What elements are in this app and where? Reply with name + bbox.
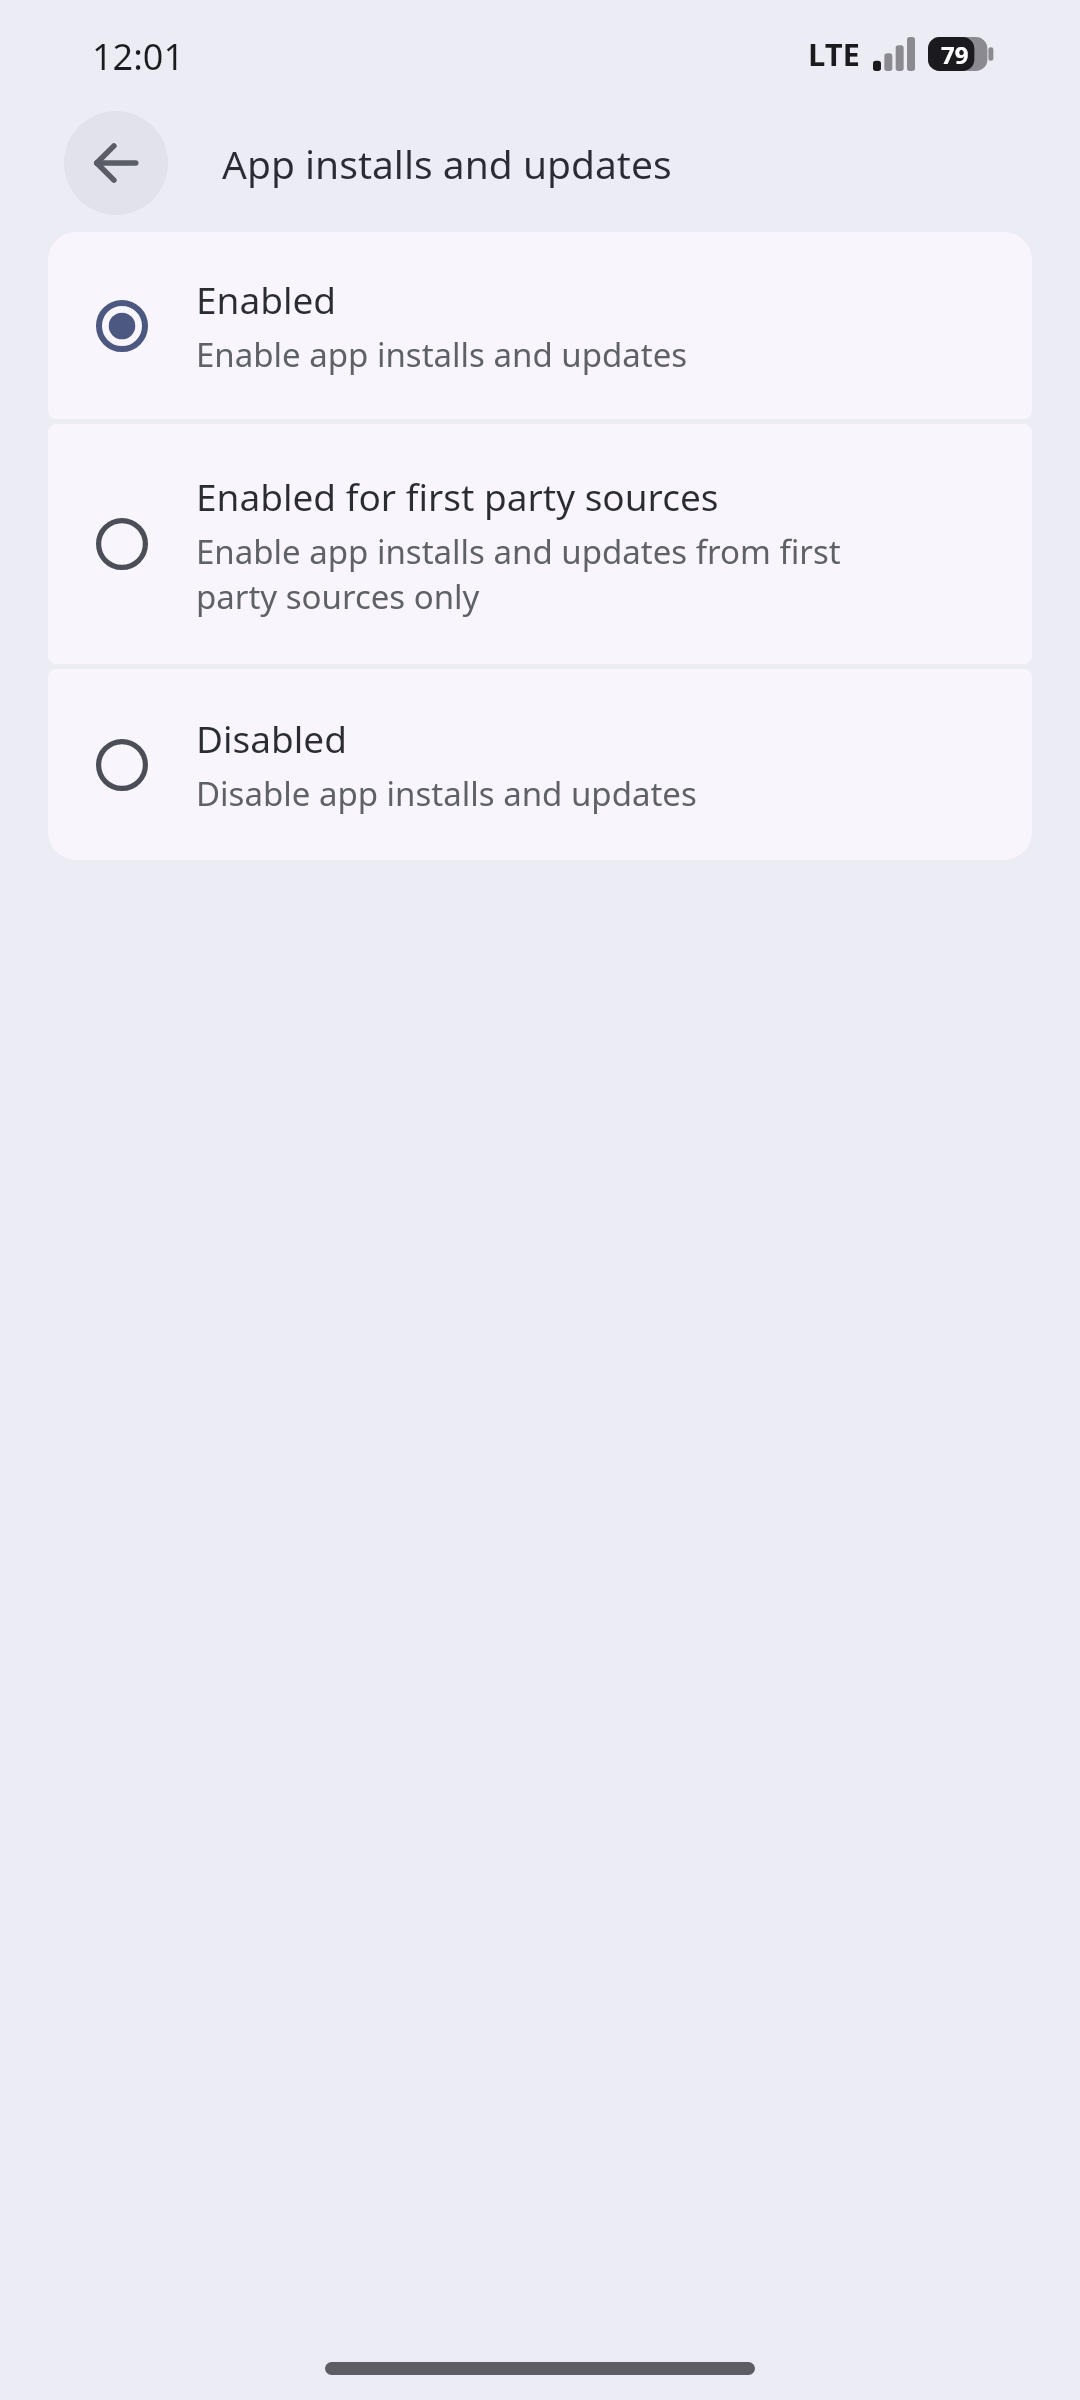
staticText: Enabled bbox=[196, 274, 337, 324]
staticText: Enable app installs and updates bbox=[196, 332, 688, 377]
staticText: Disabled bbox=[196, 713, 347, 763]
button[interactable]: Disabled bbox=[48, 669, 1032, 860]
staticText: Enabled for first party sources bbox=[196, 471, 719, 521]
staticText: 12:01 bbox=[92, 32, 185, 81]
button[interactable]: Enabled bbox=[48, 232, 1032, 419]
staticText: LTE bbox=[808, 33, 860, 75]
staticText: 79 bbox=[941, 38, 969, 71]
button[interactable]: Back bbox=[64, 111, 168, 215]
staticText: Disable app installs and updates bbox=[196, 771, 697, 816]
button[interactable]: Enabled for first party sources bbox=[48, 424, 1032, 664]
staticText: App installs and updates bbox=[222, 137, 672, 190]
staticText: Enable app installs and updates from fir… bbox=[196, 529, 841, 618]
